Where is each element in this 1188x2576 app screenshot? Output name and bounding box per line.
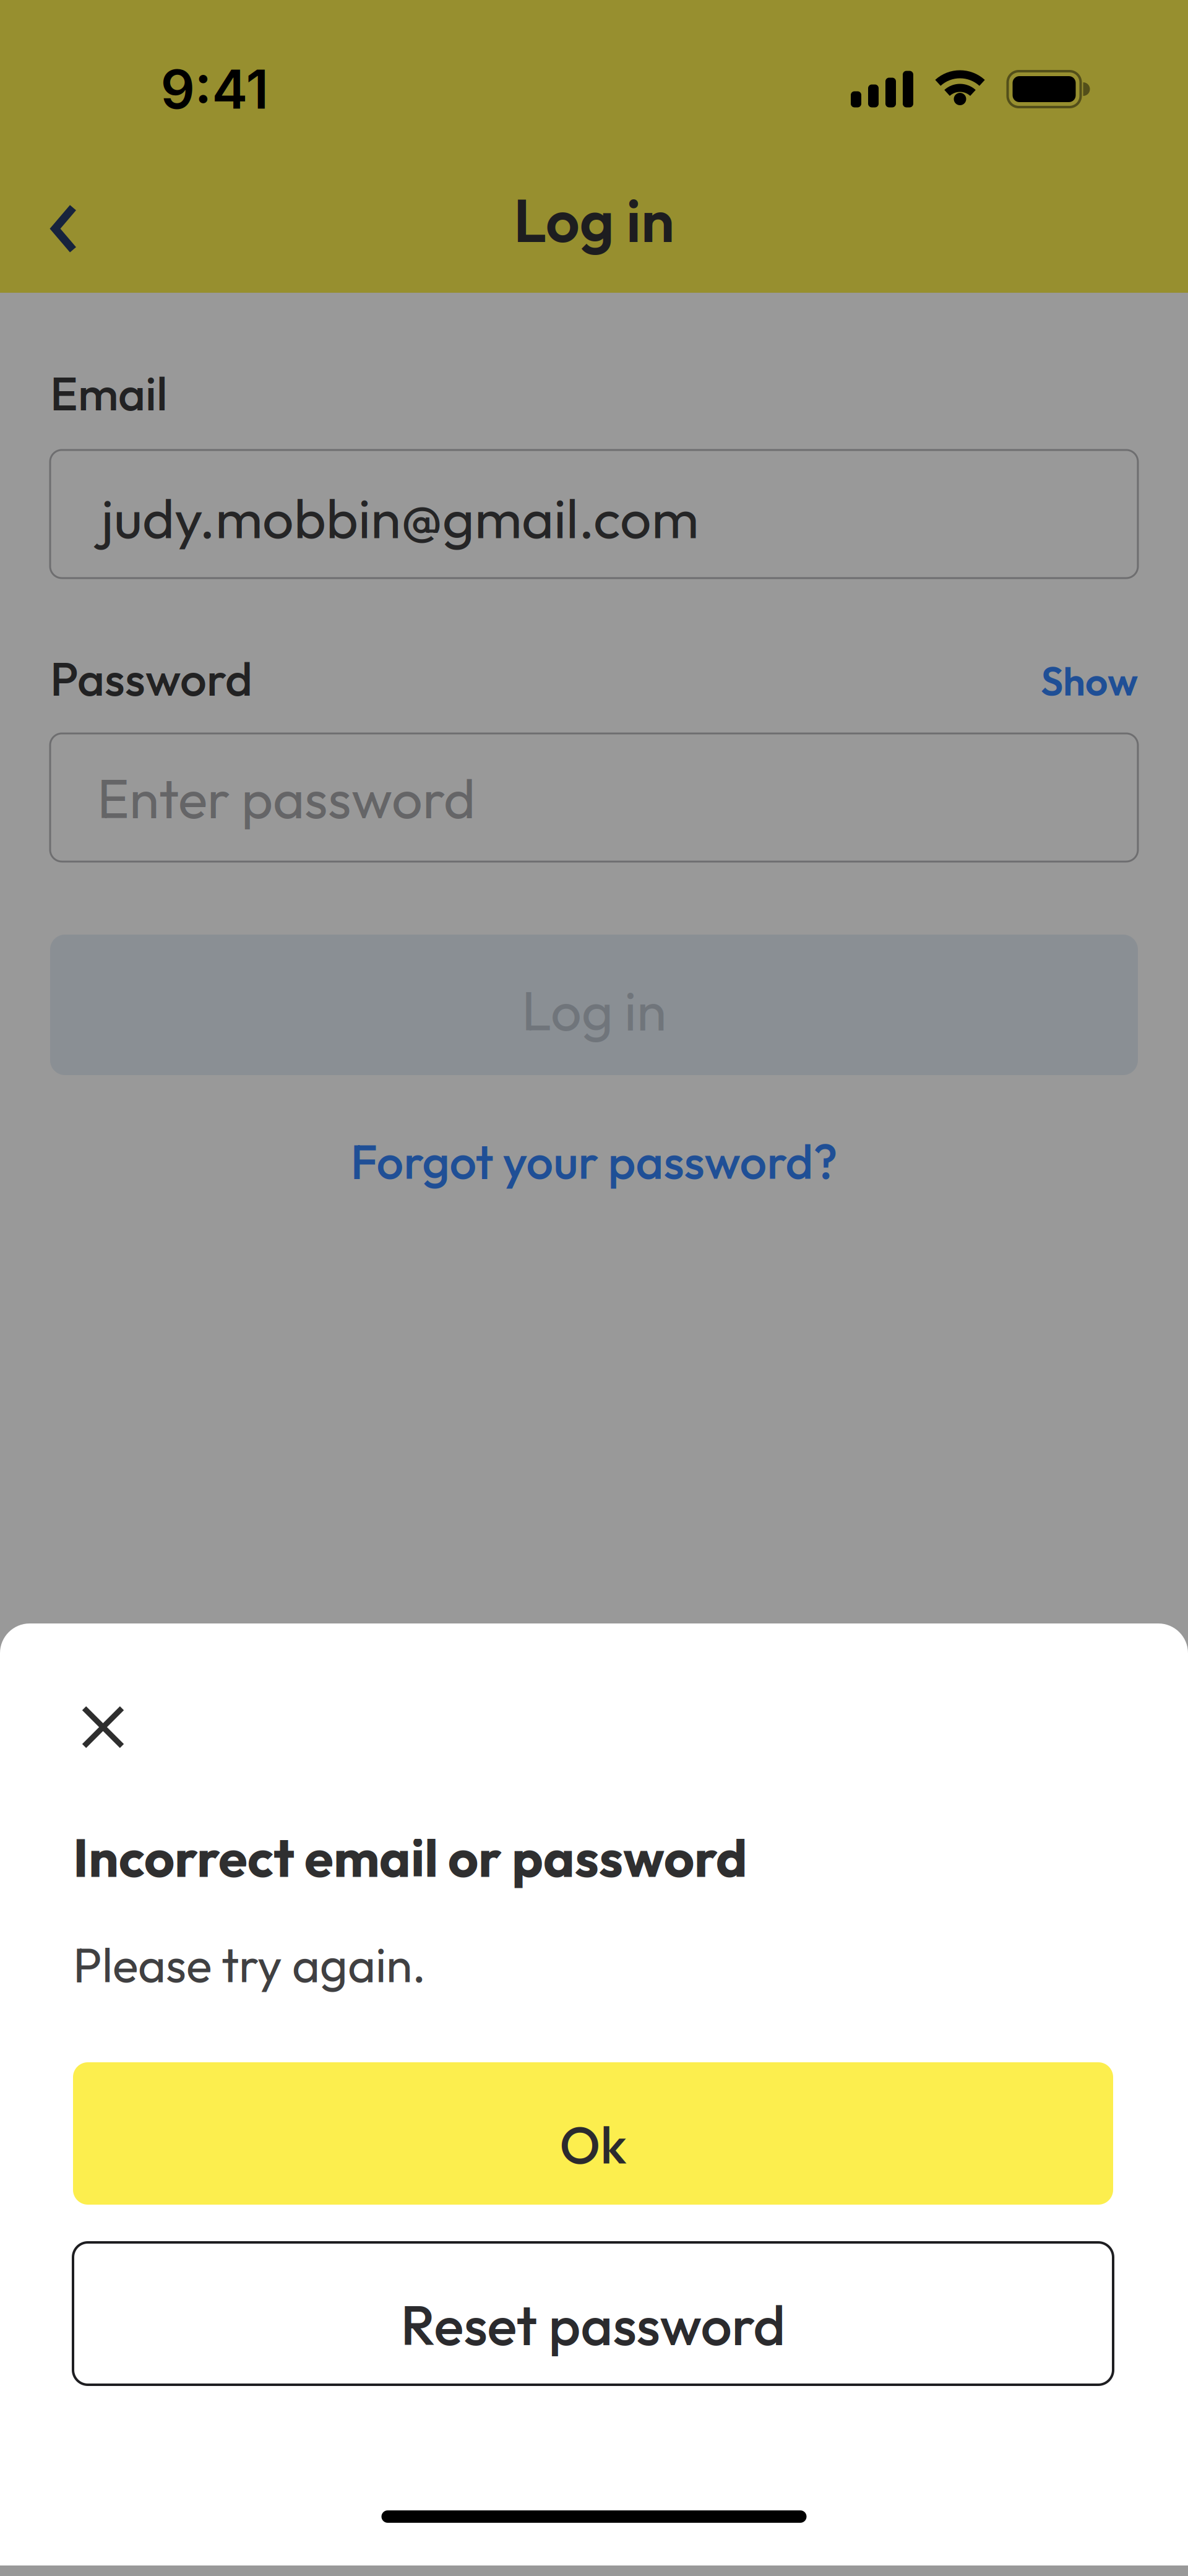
button[interactable]: Reset password [73, 2242, 1113, 2385]
staticText: Show [1041, 656, 1138, 706]
staticText: Incorrect email or password [73, 1824, 747, 1891]
staticText: Password [50, 649, 252, 708]
button[interactable]: Back [0, 199, 75, 245]
button[interactable]: Forgot your password? [50, 1130, 1138, 1192]
staticText: judy.mobbin@gmail.com [101, 483, 699, 553]
button[interactable]: Close [0, 1707, 123, 1747]
staticText: 9:41 [161, 57, 269, 122]
staticText: Reset password [401, 2290, 786, 2360]
staticText: Enter password [97, 764, 475, 832]
button[interactable]: Email field [50, 450, 1138, 578]
staticText: Ok [560, 2112, 626, 2177]
button[interactable]: Ok [73, 2062, 1113, 2205]
button[interactable]: Password field [50, 733, 1138, 862]
staticText: Please try again. [73, 1934, 426, 1995]
staticText: Log in [522, 976, 666, 1045]
staticText: Forgot your password? [351, 1131, 837, 1191]
button[interactable]: Show [1041, 653, 1138, 703]
staticText: Log in [514, 183, 674, 257]
staticText: Email [50, 363, 168, 423]
